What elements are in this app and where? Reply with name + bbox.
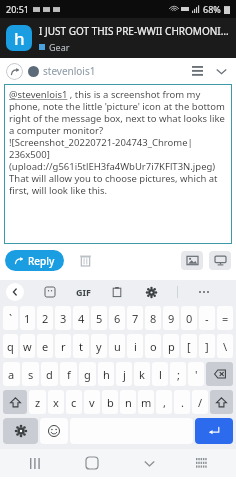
button[interactable]: g [79, 362, 96, 386]
button[interactable]: o [145, 334, 161, 358]
button[interactable]: b [102, 390, 118, 414]
button[interactable]: Back [6, 283, 24, 301]
button[interactable]: c [66, 390, 82, 414]
button[interactable]: n [120, 390, 136, 414]
button[interactable]: 6 [109, 306, 125, 330]
staticText: I JUST GOT THIS PRE-WWII CHROMONI… [39, 24, 229, 38]
button[interactable]: x [48, 390, 64, 414]
staticText: d [46, 367, 53, 382]
button[interactable]: Emoji [40, 418, 68, 444]
button[interactable]: Preview [209, 251, 231, 270]
button[interactable]: k [134, 362, 150, 386]
staticText: [ [187, 339, 191, 354]
button[interactable]: w [20, 334, 35, 358]
button[interactable]: Settings [143, 284, 159, 300]
staticText: f [67, 367, 71, 382]
button[interactable]: Clipboard [109, 284, 125, 300]
staticText: h [103, 367, 110, 382]
staticText: b [107, 395, 114, 410]
button[interactable]: Hide keyboard [137, 451, 161, 475]
button[interactable]: = [217, 306, 233, 330]
staticText: 68% [203, 3, 221, 15]
button[interactable]: / [192, 390, 208, 414]
button[interactable]: a [3, 362, 20, 386]
staticText: a [8, 367, 15, 382]
button[interactable]: [ [181, 334, 197, 358]
button[interactable]: Key [3, 390, 27, 414]
staticText: 6 [114, 311, 121, 326]
button[interactable]: u [109, 334, 125, 358]
button[interactable]: m [138, 390, 154, 414]
button[interactable]: Reply [6, 63, 23, 80]
button[interactable]: stevenlois1 [43, 64, 96, 78]
button[interactable]: i [127, 334, 143, 358]
button[interactable]: d [41, 362, 58, 386]
button[interactable]: Keyboard [189, 451, 213, 475]
staticText: 4 [78, 311, 85, 326]
staticText: , [163, 395, 166, 410]
staticText: z [35, 395, 41, 410]
button[interactable]: \ [217, 334, 233, 358]
button[interactable]: Recents [23, 451, 47, 475]
staticText: ` [9, 311, 13, 326]
button[interactable]: @stevenlois1 , this is a screenshot from… [9, 88, 227, 240]
button[interactable]: Reply [5, 250, 64, 271]
button[interactable]: 7 [127, 306, 143, 330]
button[interactable]: Keyboard settings [3, 418, 38, 444]
staticText: 0 [186, 311, 193, 326]
staticText: 1 [24, 311, 31, 326]
button[interactable]: j [116, 362, 132, 386]
button[interactable]: Enter [195, 418, 233, 444]
button[interactable]: h [98, 362, 114, 386]
staticText: k [139, 367, 145, 382]
button[interactable]: 8 [145, 306, 161, 330]
staticText: o [150, 339, 157, 354]
button[interactable]: Home [6, 25, 32, 51]
button[interactable]: 5 [91, 306, 107, 330]
staticText: h [14, 27, 25, 50]
button[interactable]: y [91, 334, 107, 358]
button[interactable]: GIF [76, 286, 91, 298]
button[interactable]: l [152, 362, 168, 386]
button[interactable]: Home [80, 451, 104, 475]
button[interactable]: q [3, 334, 18, 358]
staticText: w [23, 339, 32, 354]
button[interactable]: , [156, 390, 172, 414]
button[interactable]: e [37, 334, 53, 358]
button[interactable]: ` [3, 306, 18, 330]
button[interactable]: Expand [212, 62, 230, 80]
staticText: - [205, 311, 209, 326]
button[interactable]: r [55, 334, 71, 358]
button[interactable]: v [84, 390, 100, 414]
staticText: ] [205, 339, 209, 354]
staticText: 3 [60, 311, 67, 326]
staticText: 5 [96, 311, 103, 326]
button[interactable]: ] [199, 334, 215, 358]
button[interactable]: Insert image [181, 251, 203, 270]
button[interactable]: 1 [20, 306, 35, 330]
button[interactable]: Menu [188, 62, 206, 80]
button[interactable]: Stickers [42, 284, 58, 300]
button[interactable]: - [199, 306, 215, 330]
button[interactable]: z [29, 390, 46, 414]
button[interactable]: 3 [55, 306, 71, 330]
staticText: p [168, 339, 175, 354]
staticText: y [96, 339, 102, 354]
button[interactable]: t [73, 334, 89, 358]
button[interactable]: 2 [37, 306, 53, 330]
button[interactable]: . [174, 390, 190, 414]
button[interactable]: s [22, 362, 39, 386]
button[interactable]: p [163, 334, 179, 358]
button[interactable]: Key [210, 390, 233, 414]
button[interactable]: ; [170, 362, 186, 386]
button[interactable]: 0 [181, 306, 197, 330]
button[interactable]: More [196, 284, 212, 300]
button[interactable]: 9 [163, 306, 179, 330]
button[interactable]: Key [206, 362, 233, 386]
button[interactable]: Delete [74, 249, 96, 271]
button[interactable]: 4 [73, 306, 89, 330]
staticText: . [181, 395, 184, 410]
button[interactable]: f [60, 362, 77, 386]
button[interactable]: ' [188, 362, 204, 386]
